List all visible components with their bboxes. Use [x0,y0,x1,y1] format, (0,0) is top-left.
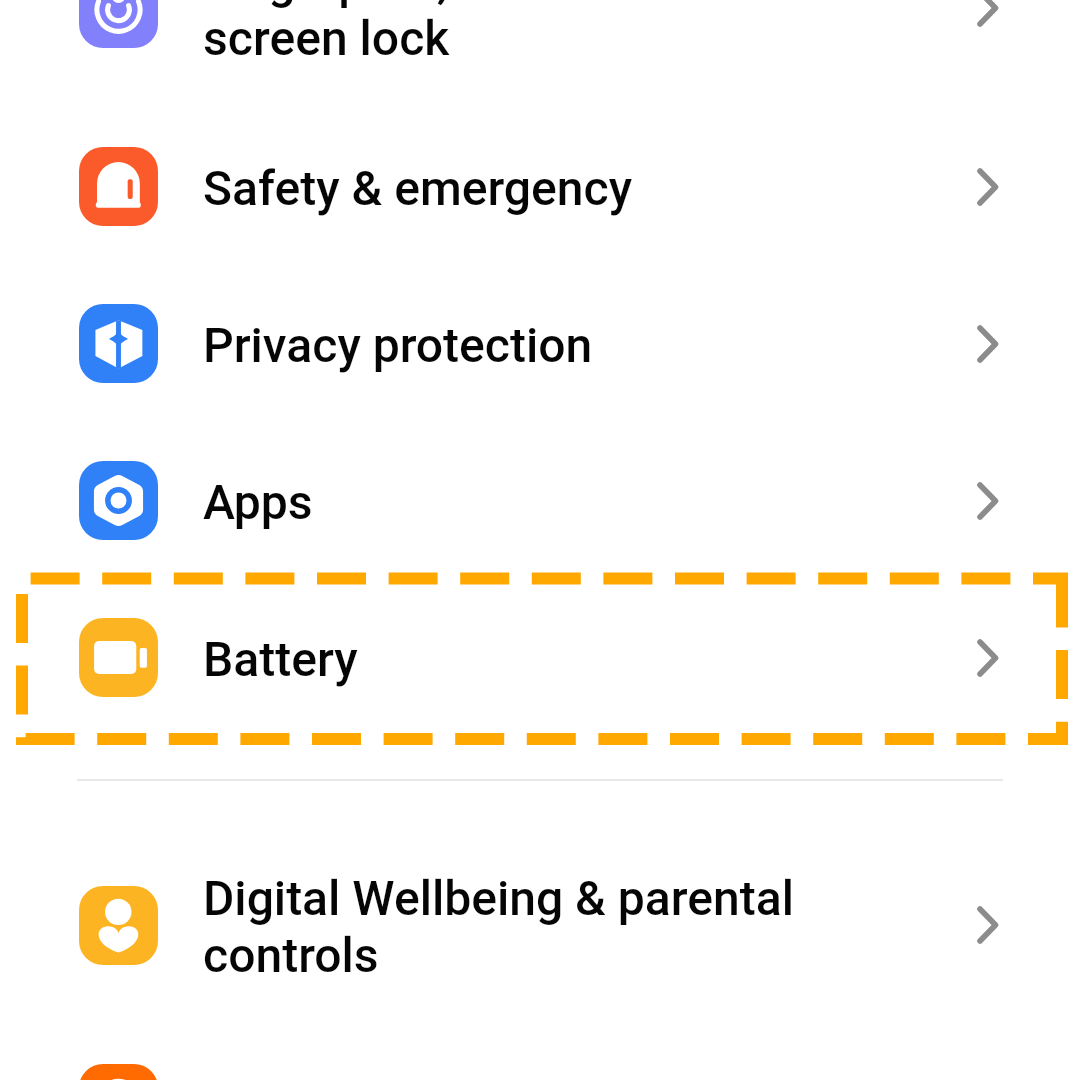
button[interactable]: Privacy protection [0,265,1080,422]
staticText: Safety & emergency [203,160,943,217]
other: Battery [964,636,1008,680]
other: Fingerprint, face & screen lock [964,0,1008,30]
staticText: Privacy protection [203,317,943,374]
other: Privacy protection [964,322,1008,366]
other: Digital Wellbeing & parental controls [964,903,1008,947]
button[interactable]: Tips & support [0,1025,1080,1080]
button[interactable]: Safety & emergency [0,108,1080,265]
button[interactable]: Battery [0,579,1080,736]
other: Battery highlighted [0,0,1080,1080]
button[interactable]: Digital Wellbeing & parental controls [0,818,1080,1032]
button[interactable]: Fingerprint, face & screen lock [0,0,1080,115]
staticText: Fingerprint, face & screen lock [203,0,943,67]
other: Safety & emergency [964,165,1008,209]
other: Apps [964,479,1008,523]
staticText: Battery [203,631,943,688]
staticText: Apps [203,474,943,531]
staticText: Digital Wellbeing & parental controls [203,870,943,984]
button[interactable]: Apps [0,422,1080,579]
